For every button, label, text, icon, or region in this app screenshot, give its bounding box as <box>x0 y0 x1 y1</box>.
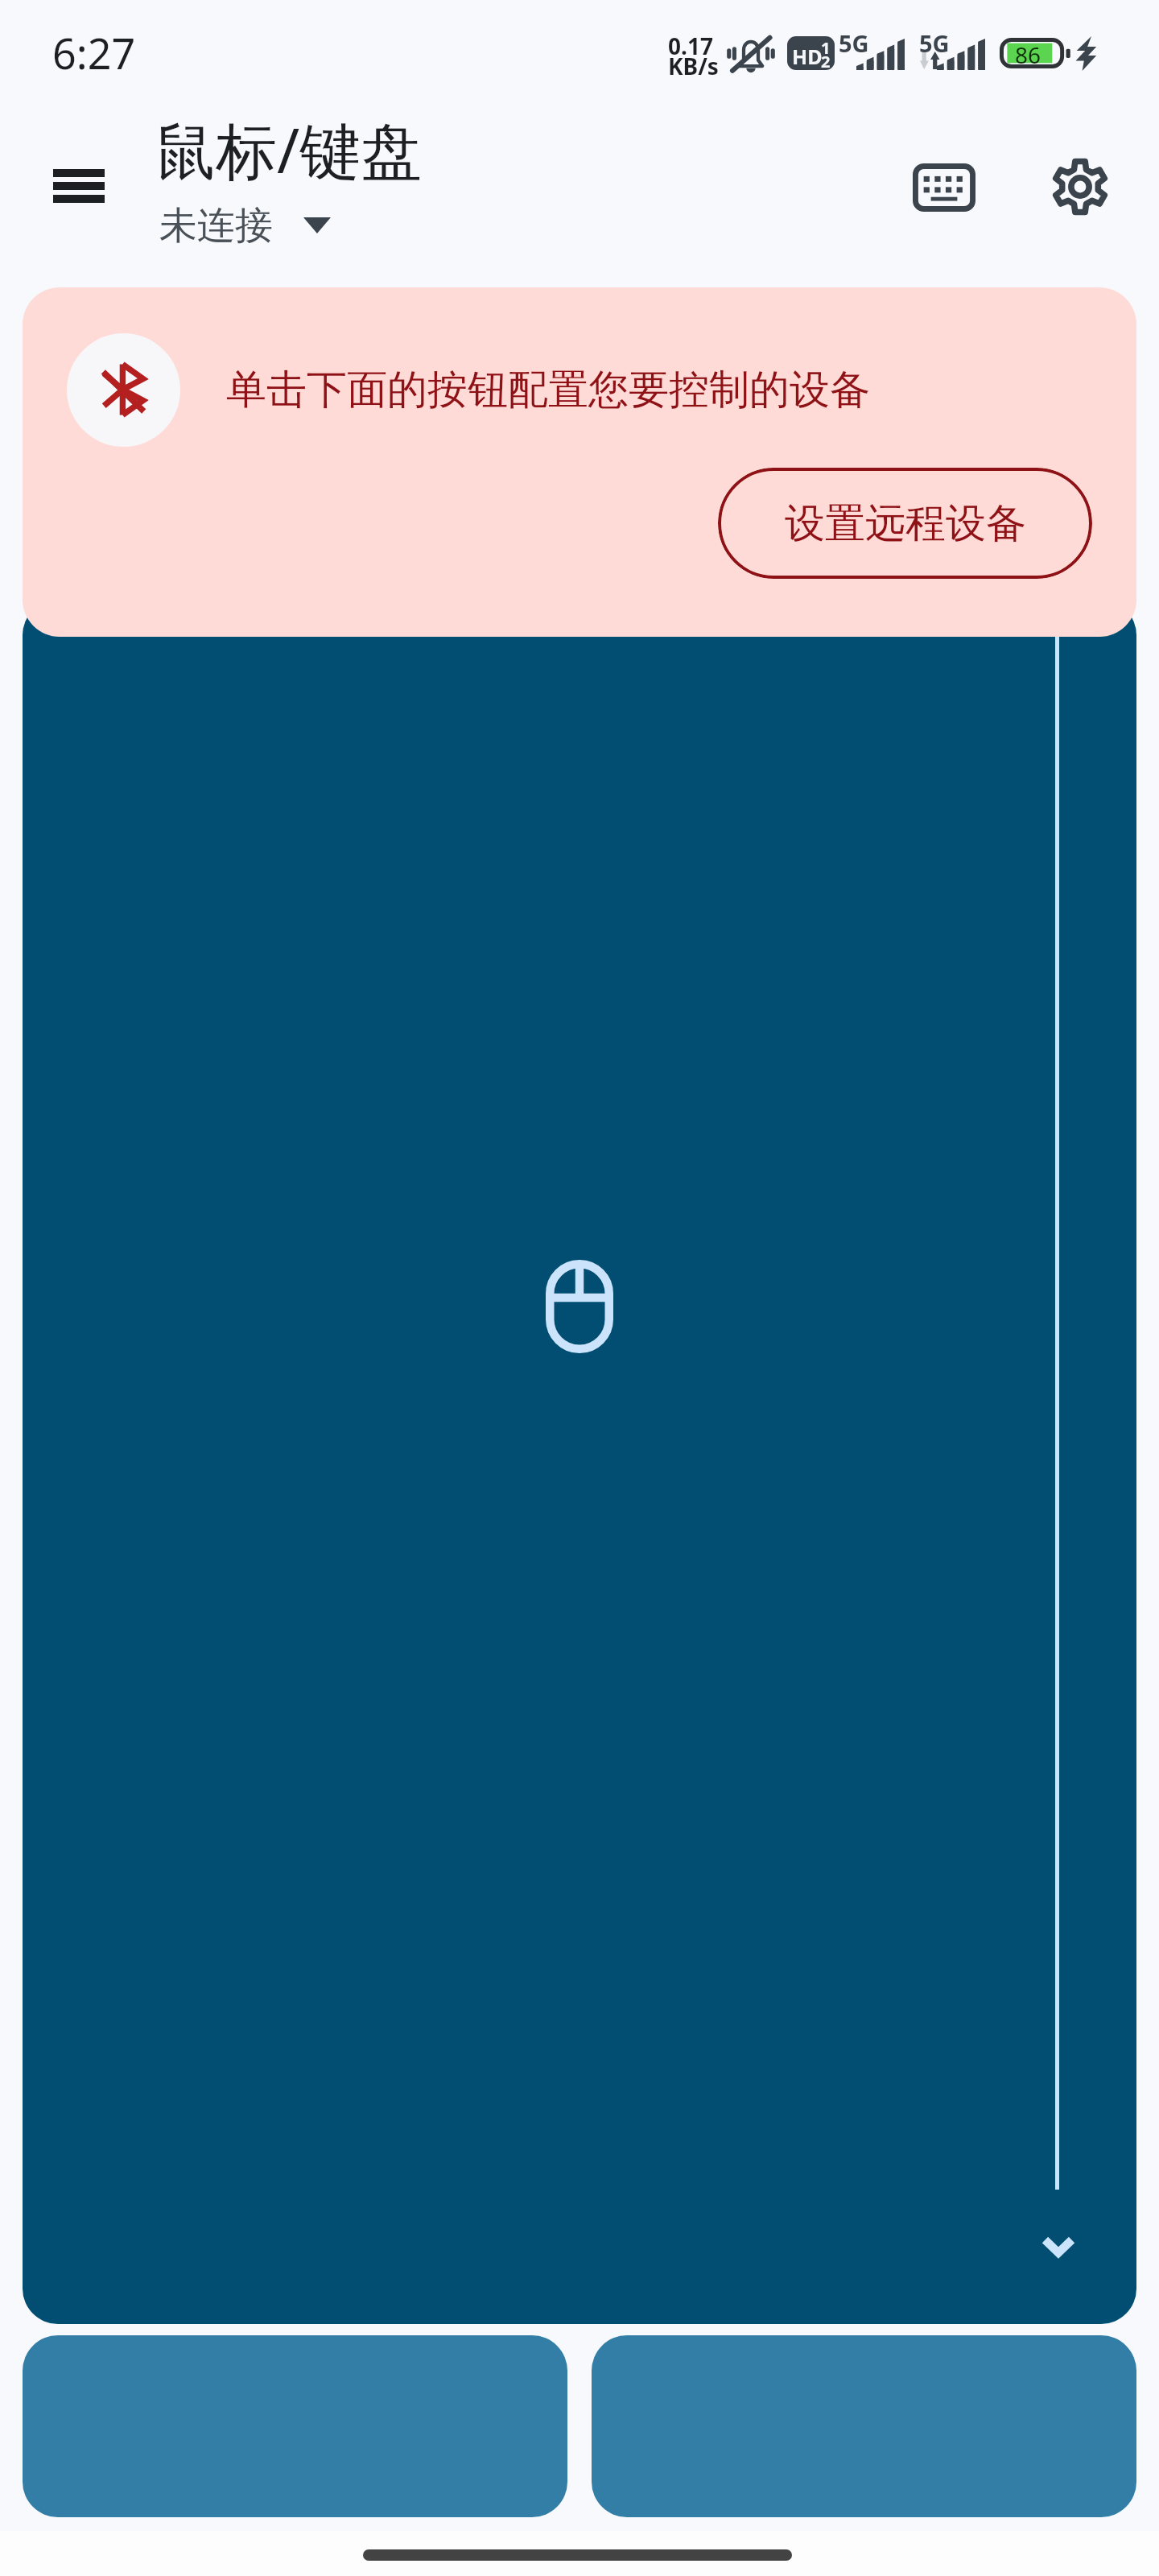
staticText: 0.17 <box>668 31 713 61</box>
staticText: 未连接 <box>159 202 273 250</box>
button[interactable]: 未连接 <box>159 200 331 248</box>
staticText: HD <box>792 43 823 70</box>
button[interactable]: Touchpad <box>23 600 1136 2324</box>
staticText: 86 <box>1015 39 1041 70</box>
staticText: 2 <box>821 51 831 70</box>
button[interactable]: Left click <box>23 2335 567 2517</box>
staticText: 6:27 <box>52 24 136 81</box>
staticText: 设置远程设备 <box>785 498 1026 549</box>
button[interactable]: Menu <box>34 141 124 231</box>
button[interactable]: Right click <box>592 2335 1136 2517</box>
staticText: KB/s <box>668 51 719 81</box>
staticText: 1 <box>821 37 831 59</box>
staticText: 鼠标/键盘 <box>155 108 423 192</box>
staticText: 5G <box>839 27 869 59</box>
button[interactable]: Settings <box>1035 142 1125 232</box>
button[interactable]: Keyboard <box>899 142 989 233</box>
button[interactable]: 设置远程设备 <box>718 468 1092 579</box>
staticText: 单击下面的按钮配置您要控制的设备 <box>226 365 870 415</box>
staticText: 5G <box>919 27 950 59</box>
